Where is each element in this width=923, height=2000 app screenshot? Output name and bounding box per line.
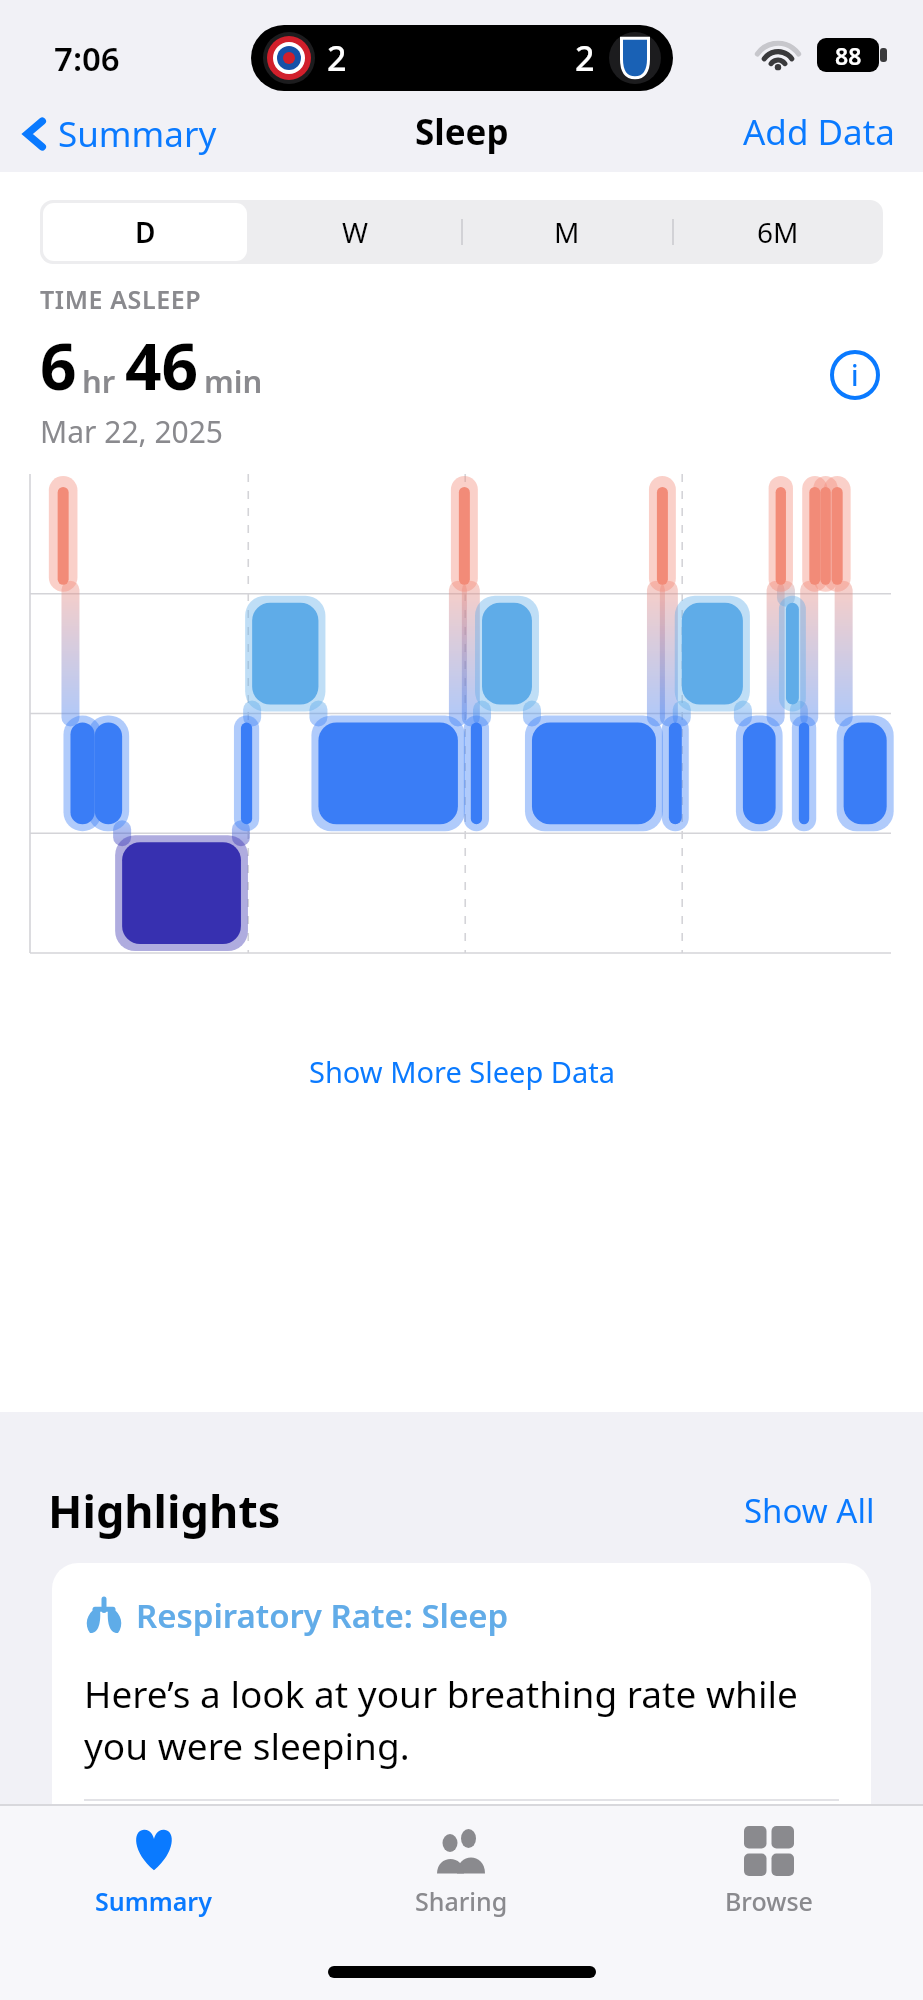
button[interactable]: Respiratory Rate: Sleep	[52, 1563, 871, 1983]
staticText: 88	[835, 40, 862, 71]
staticText: D	[135, 213, 156, 251]
staticText: Summary	[95, 1884, 212, 1918]
button[interactable]: Add Data	[743, 108, 895, 156]
staticText: 21.5	[414, 1858, 510, 1923]
button[interactable]: 6M	[672, 200, 883, 264]
button[interactable]: Live Activity score	[251, 25, 673, 91]
button[interactable]: Browse	[615, 1820, 923, 1924]
staticText: MAX	[430, 1823, 493, 1858]
staticText: 46	[125, 322, 199, 409]
staticText: Highlights	[48, 1480, 281, 1541]
staticText: Sleep	[415, 108, 509, 156]
button[interactable]: W	[250, 200, 461, 264]
staticText: 7:06	[54, 36, 120, 81]
button[interactable]: Show All	[744, 1488, 875, 1533]
staticText: Show All	[744, 1488, 875, 1533]
staticText: Respiratory Rate: Sleep	[136, 1593, 509, 1638]
button[interactable]: Sharing	[307, 1820, 615, 1924]
staticText: Summary	[58, 110, 217, 158]
button[interactable]: Summary	[0, 1820, 307, 1924]
staticText: M	[554, 213, 580, 251]
button[interactable]: Summary	[22, 110, 217, 158]
staticText: min	[204, 360, 263, 402]
staticText: 6	[40, 322, 77, 409]
staticText: 2	[575, 35, 595, 81]
button[interactable]: Show More Sleep Data	[0, 1037, 923, 1105]
staticText: TIME ASLEEP	[40, 282, 202, 316]
staticText: 2	[327, 35, 347, 81]
staticText: Mar 22, 2025	[40, 411, 224, 452]
staticText: Sharing	[415, 1884, 508, 1918]
button[interactable]: M	[461, 200, 672, 264]
staticText: hr	[82, 360, 116, 402]
staticText: i	[851, 356, 859, 394]
staticText: Here’s a look at your breathing rate whi…	[84, 1668, 839, 1771]
staticText: W	[342, 213, 369, 251]
button[interactable]: About sleep stages	[827, 347, 883, 403]
button[interactable]: D	[40, 200, 250, 264]
staticText: Browse	[725, 1884, 813, 1918]
staticText: 6M	[757, 213, 799, 251]
staticText: Show More Sleep Data	[309, 1052, 615, 1091]
